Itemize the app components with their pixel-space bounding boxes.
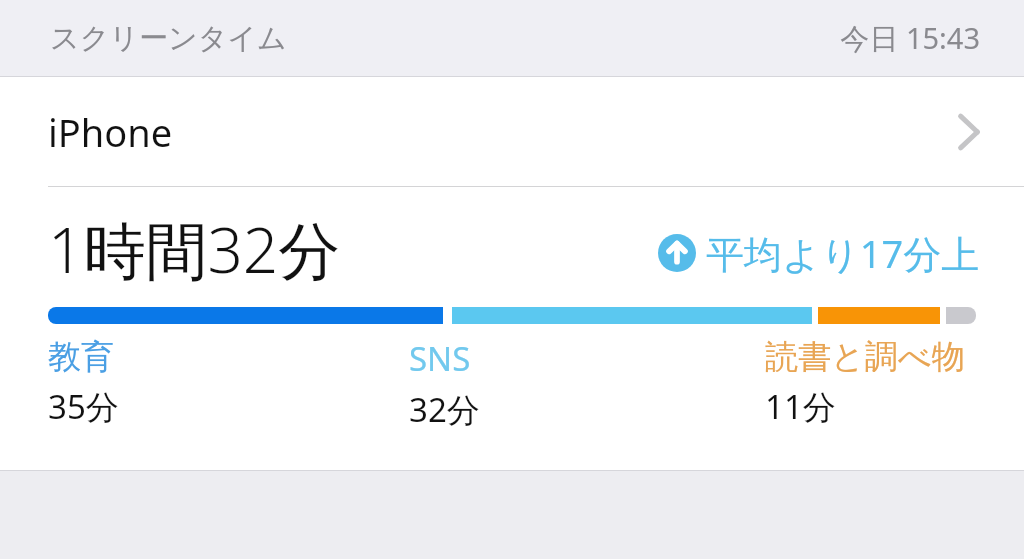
staticText: 35分 bbox=[48, 384, 119, 429]
button[interactable]: スクリーンタイム bbox=[0, 0, 1024, 76]
button[interactable]: 読書と調べ物 bbox=[765, 336, 965, 429]
other: 平均より上 bbox=[658, 234, 696, 272]
button[interactable]: SNS bbox=[409, 336, 480, 432]
button[interactable]: 教育 bbox=[48, 336, 119, 429]
staticText: SNS bbox=[409, 336, 471, 381]
staticText: 32分 bbox=[409, 387, 480, 432]
button[interactable]: iPhone bbox=[0, 77, 1024, 186]
staticText: 読書と調べ物 bbox=[765, 336, 965, 378]
staticText: 平均より17分上 bbox=[706, 227, 980, 279]
staticText: 今日 15:43 bbox=[840, 18, 980, 58]
staticText: 教育 bbox=[48, 336, 114, 378]
staticText: 1時間32分 bbox=[48, 207, 341, 292]
staticText: 11分 bbox=[765, 384, 836, 429]
other: 詳細を表示 bbox=[959, 114, 979, 150]
staticText: スクリーンタイム bbox=[50, 20, 287, 57]
staticText: iPhone bbox=[48, 106, 173, 158]
